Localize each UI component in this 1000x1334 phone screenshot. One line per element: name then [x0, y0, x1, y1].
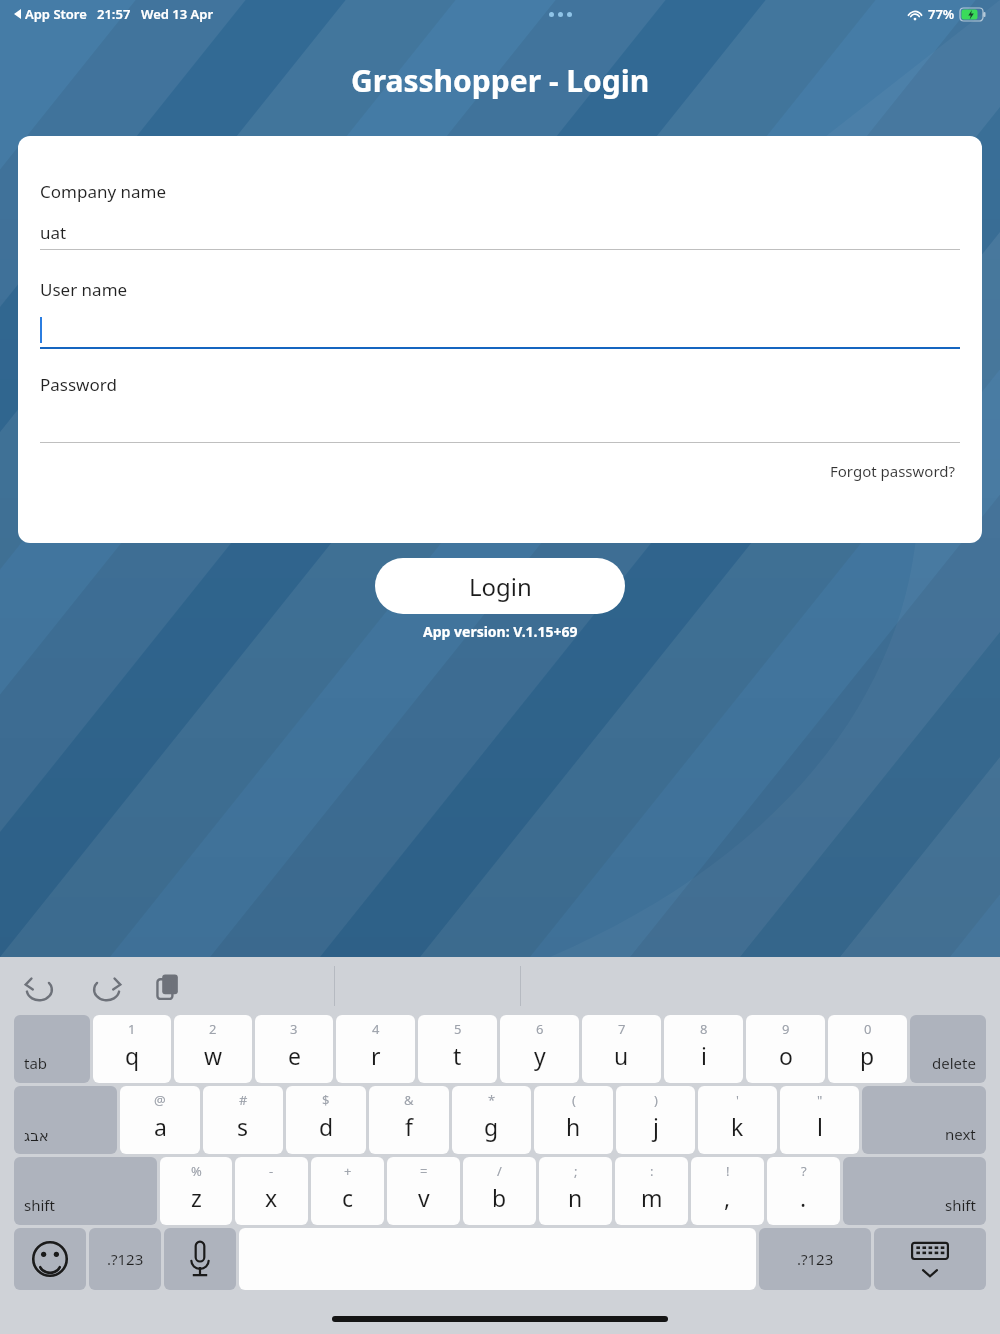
button[interactable]: *	[452, 1086, 531, 1154]
button[interactable]: !	[691, 1157, 764, 1225]
button[interactable]: 0	[828, 1015, 907, 1083]
button[interactable]: Hide keyboard	[874, 1228, 986, 1290]
button[interactable]: 1	[93, 1015, 171, 1083]
staticText: shift	[945, 1195, 976, 1215]
button[interactable]: 3	[255, 1015, 333, 1083]
staticText: n	[568, 1182, 583, 1213]
staticText: &	[404, 1091, 414, 1109]
button[interactable]: (	[534, 1086, 613, 1154]
button[interactable]: ;	[539, 1157, 612, 1225]
button[interactable]: /	[463, 1157, 536, 1225]
staticText: Grasshopper - Login	[351, 60, 650, 101]
staticText: *	[488, 1091, 496, 1109]
button[interactable]: )	[616, 1086, 695, 1154]
button[interactable]: Emoji	[14, 1228, 86, 1290]
staticText: delete	[932, 1053, 976, 1073]
button[interactable]: tab	[14, 1015, 90, 1083]
staticText: .	[800, 1182, 807, 1213]
button[interactable]: .?123	[89, 1228, 161, 1290]
staticText: Forgot password?	[830, 461, 956, 481]
button[interactable]: #	[203, 1086, 283, 1154]
button[interactable]: &	[369, 1086, 449, 1154]
button[interactable]: 6	[500, 1015, 579, 1083]
staticText: f	[405, 1111, 413, 1142]
staticText: 4	[372, 1020, 380, 1038]
staticText: 7	[618, 1020, 626, 1038]
button[interactable]: 4	[336, 1015, 415, 1083]
staticText: ;	[574, 1162, 578, 1180]
button[interactable]: -	[235, 1157, 308, 1225]
staticText: d	[319, 1111, 334, 1142]
staticText: 8	[700, 1020, 708, 1038]
staticText: 3	[290, 1020, 298, 1038]
staticText: s	[237, 1111, 249, 1142]
button[interactable]: ?	[767, 1157, 840, 1225]
staticText: %	[191, 1162, 202, 1180]
staticText: ,	[724, 1182, 731, 1213]
staticText: p	[860, 1040, 875, 1071]
staticText: 9	[782, 1020, 790, 1038]
staticText: 5	[454, 1020, 462, 1038]
button[interactable]: 8	[664, 1015, 743, 1083]
button[interactable]: Paste	[152, 969, 186, 1003]
staticText: i	[701, 1040, 707, 1071]
staticText: x	[265, 1182, 278, 1213]
staticText: h	[566, 1111, 581, 1142]
staticText: @	[154, 1091, 166, 1109]
staticText: :	[650, 1162, 654, 1180]
button[interactable]: Undo	[24, 969, 58, 1003]
button[interactable]: 5	[418, 1015, 497, 1083]
button[interactable]: "	[780, 1086, 859, 1154]
staticText: uat	[40, 221, 67, 244]
staticText: .?123	[107, 1249, 144, 1269]
staticText: Password	[40, 373, 117, 396]
button[interactable]: '	[698, 1086, 777, 1154]
button[interactable]: +	[311, 1157, 384, 1225]
button[interactable]: :	[615, 1157, 688, 1225]
button[interactable]: .?123	[759, 1228, 871, 1290]
staticText: #	[239, 1091, 248, 1109]
button[interactable]: =	[387, 1157, 460, 1225]
staticText: אבג	[24, 1127, 49, 1144]
button[interactable]: Login	[375, 558, 625, 614]
button[interactable]: Redo	[88, 969, 122, 1003]
button[interactable]: אבג	[14, 1086, 117, 1154]
staticText: =	[420, 1162, 428, 1180]
button[interactable]: $	[286, 1086, 366, 1154]
staticText: z	[191, 1182, 202, 1213]
button[interactable]: next	[862, 1086, 986, 1154]
button[interactable]: Dictation	[164, 1228, 236, 1290]
button[interactable]: 9	[746, 1015, 825, 1083]
staticText: v	[418, 1182, 430, 1213]
button[interactable]: @	[120, 1086, 200, 1154]
staticText: '	[736, 1091, 739, 1109]
staticText: +	[344, 1162, 352, 1180]
button[interactable]: 2	[174, 1015, 252, 1083]
staticText: .?123	[797, 1249, 834, 1269]
staticText: tab	[24, 1053, 48, 1073]
staticText: w	[204, 1040, 223, 1071]
staticText: y	[534, 1040, 546, 1071]
staticText: l	[817, 1111, 823, 1142]
button[interactable]: %	[160, 1157, 232, 1225]
button[interactable]: delete	[910, 1015, 986, 1083]
staticText: shift	[24, 1195, 55, 1215]
staticText: m	[641, 1182, 663, 1213]
staticText: 21:57	[97, 5, 131, 23]
staticText: r	[371, 1040, 381, 1071]
staticText: 2	[209, 1020, 217, 1038]
button[interactable]: 7	[582, 1015, 661, 1083]
staticText: Wed 13 Apr	[141, 5, 214, 23]
button[interactable]: shift	[14, 1157, 157, 1225]
staticText: c	[342, 1182, 354, 1213]
staticText: o	[779, 1040, 793, 1071]
staticText: "	[817, 1091, 823, 1109]
staticText: 6	[536, 1020, 544, 1038]
staticText: 77%	[928, 5, 955, 23]
button[interactable]: shift	[843, 1157, 986, 1225]
staticText: !	[726, 1162, 730, 1180]
button[interactable]: Forgot password?	[826, 457, 960, 485]
staticText: ?	[801, 1162, 807, 1180]
staticText: e	[288, 1040, 301, 1071]
